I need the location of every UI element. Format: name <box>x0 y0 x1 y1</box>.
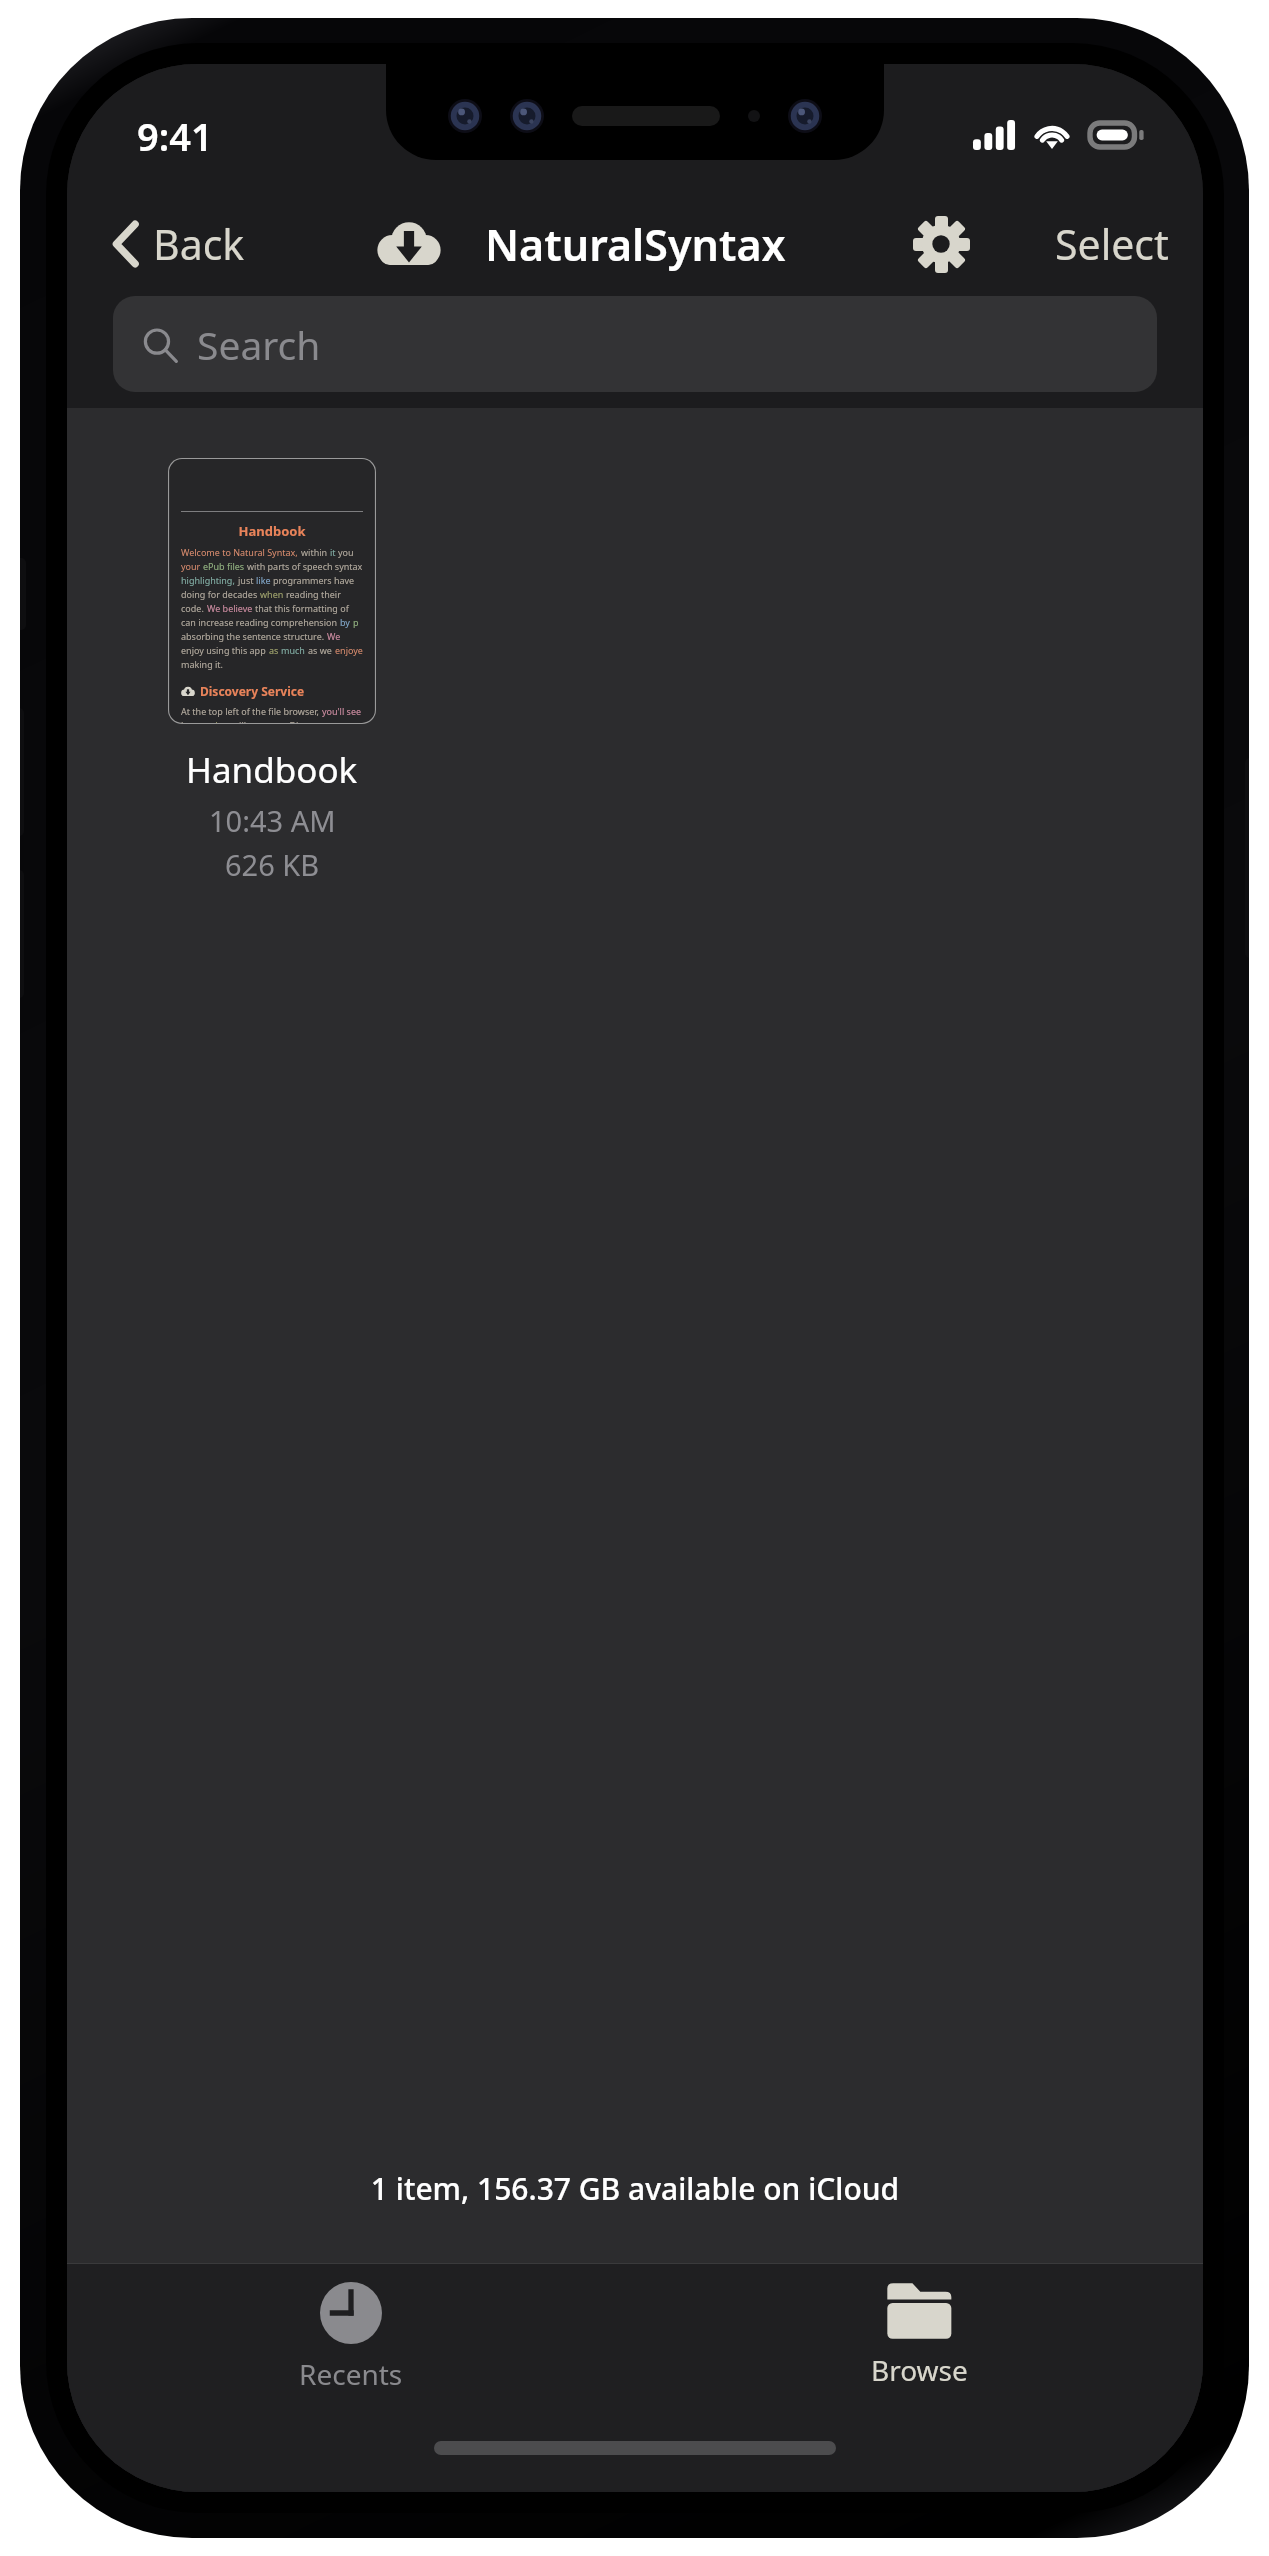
button[interactable]: Back <box>99 206 259 282</box>
button[interactable]: Handbook <box>149 456 395 886</box>
staticText: code. <box>181 602 207 614</box>
staticText: doing for decades <box>181 588 260 600</box>
staticText: reading their source <box>286 588 363 600</box>
staticText: you'll see a <box>322 705 363 717</box>
staticText: Browse <box>871 2351 968 2389</box>
staticText: you can read <box>338 546 363 558</box>
staticText: making it. <box>181 658 224 670</box>
staticText: 626 KB <box>225 845 320 884</box>
staticText: just <box>238 574 256 586</box>
staticText: will open our Discovery Service. <box>232 719 363 724</box>
staticText: 1 item, 156.37 GB available on iCloud <box>67 2168 1203 2209</box>
button[interactable]: Recents <box>67 2264 635 2420</box>
staticText: Back <box>153 216 245 272</box>
staticText: Recents <box>299 2355 403 2393</box>
button[interactable]: Select <box>1039 206 1185 282</box>
staticText: Welcome to Natural Syntax, <box>181 546 301 558</box>
button[interactable]: Settings <box>895 198 987 290</box>
button[interactable]: Downloads <box>361 196 457 292</box>
staticText: 10:43 AM <box>209 801 336 840</box>
staticText: absorbing the sentence structure. <box>181 630 327 642</box>
button[interactable]: Browse <box>635 2264 1203 2420</box>
staticText: like <box>256 574 273 586</box>
staticText: enjoy using this app <box>181 644 269 656</box>
staticText: enjoyed <box>335 644 363 656</box>
staticText: NaturalSyntax <box>485 215 786 274</box>
staticText: We believe <box>207 602 255 614</box>
staticText: your <box>181 560 203 572</box>
staticText: within <box>301 546 330 558</box>
staticText: We hope you <box>327 630 363 642</box>
button[interactable]: Search <box>113 296 1157 392</box>
staticText: with parts of speech syntax <box>247 560 363 572</box>
staticText: Select <box>1055 216 1169 272</box>
staticText: Search <box>197 318 321 371</box>
staticText: highlighting, <box>181 574 238 586</box>
staticText: Handbook <box>186 746 358 794</box>
staticText: it <box>330 546 338 558</box>
staticText: that <box>212 719 232 724</box>
staticText: 9:41 <box>137 110 213 162</box>
staticText: can increase reading comprehension <box>181 616 340 628</box>
staticText: much <box>281 644 308 656</box>
staticText: that this formatting of the text <box>255 602 363 614</box>
staticText: as we <box>308 644 335 656</box>
staticText: At the top left of the file browser, <box>181 705 322 717</box>
staticText: ePub files <box>203 560 247 572</box>
staticText: when <box>260 588 286 600</box>
staticText: button <box>181 719 212 724</box>
staticText: Handbook <box>181 522 363 540</box>
staticText: by <box>340 616 353 628</box>
staticText: as <box>269 644 281 656</box>
staticText: Discovery Service <box>200 683 305 699</box>
staticText: programmers have been <box>273 574 363 586</box>
staticText: passively <box>353 616 363 628</box>
